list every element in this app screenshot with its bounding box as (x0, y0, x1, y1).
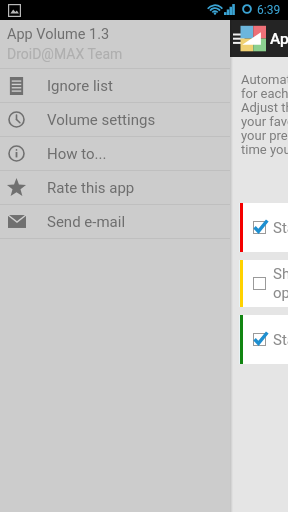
button[interactable]: Start on boot (239, 203, 288, 252)
staticText: How to... (47, 145, 107, 163)
staticText: 6:39 (257, 3, 281, 17)
staticText: Rate this app (47, 179, 135, 197)
button[interactable]: Send e-mail (0, 205, 230, 238)
button[interactable]: Open navigation drawer (231, 22, 269, 54)
staticText: Automatically set volume for each app. A… (241, 72, 288, 158)
staticText: Show notification option (273, 265, 288, 302)
staticText: Send e-mail (47, 213, 126, 231)
button[interactable]: Volume settings (0, 103, 230, 136)
button[interactable]: Ignore list (0, 69, 230, 102)
staticText: Volume settings (47, 111, 156, 129)
staticText: DroiD@MAX Team (7, 46, 123, 62)
staticText: App Volume 1.3 (7, 26, 110, 43)
staticText: Start on boot (273, 219, 288, 237)
button[interactable]: Start service (239, 315, 288, 364)
button[interactable]: Show notification option (239, 260, 288, 307)
staticText: Ignore list (47, 77, 113, 95)
button[interactable]: How to... (0, 137, 230, 170)
staticText: Start service (273, 331, 288, 349)
button[interactable]: Rate this app (0, 171, 230, 204)
staticText: App Volume (270, 30, 288, 48)
